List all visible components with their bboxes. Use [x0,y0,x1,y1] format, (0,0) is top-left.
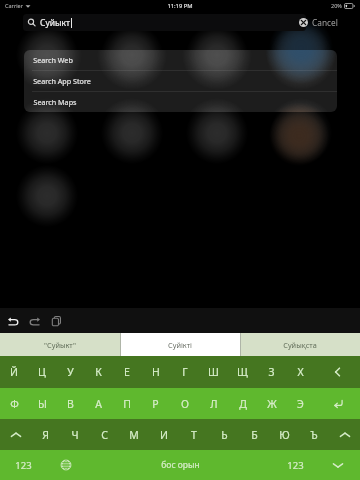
button[interactable]: Ю [269,419,299,450]
button[interactable]: Return [315,388,360,419]
button[interactable]: Search Web [24,50,337,70]
button[interactable]: Д [228,388,257,419]
staticText: Ч [71,428,79,442]
button[interactable]: У [56,356,84,388]
button[interactable]: Е [112,356,141,388]
staticText: Г [182,365,188,379]
button[interactable]: "Суйыкт" [0,333,120,356]
staticText: Search Maps [33,97,77,107]
staticText: 123 [15,459,32,472]
button[interactable]: Redo [28,314,41,327]
staticText: Search App Store [33,76,91,86]
staticText: 20% [331,2,342,9]
button[interactable]: Ф [0,388,28,419]
staticText: 123 [287,459,304,472]
staticText: Суйікті [168,340,192,350]
button[interactable]: Copy [50,314,63,327]
staticText: В [67,397,74,411]
staticText: Б [251,428,258,442]
staticText: Суйықста [283,340,317,350]
button[interactable]: Суйықста [240,333,360,356]
button[interactable]: Undo [6,314,19,327]
button[interactable]: Б [239,419,269,450]
button[interactable]: 123 [274,450,316,480]
button[interactable]: А [84,388,112,419]
staticText: Л [210,397,218,411]
staticText: П [123,397,131,411]
button[interactable]: Next keyboard [46,450,86,480]
staticText: Н [152,365,160,379]
button[interactable]: Hide keyboard [316,450,360,480]
staticText: З [268,365,275,379]
button[interactable]: В [56,388,84,419]
button[interactable]: Н [141,356,170,388]
staticText: Ы [38,397,47,411]
staticText: Ц [38,365,46,379]
staticText: Ъ [310,428,318,442]
staticText: Cancel [312,17,338,28]
button[interactable]: Суйыкт [23,14,306,31]
staticText: У [67,365,74,379]
staticText: Ф [10,397,19,411]
button[interactable]: Ь [209,419,239,450]
button[interactable]: Search Maps [24,91,337,112]
button[interactable]: Backspace [315,356,360,388]
staticText: Ж [267,397,277,411]
staticText: Суйыкт [40,17,70,29]
button[interactable]: Щ [228,356,257,388]
button[interactable]: Ч [60,419,89,450]
button[interactable]: Л [199,388,228,419]
button[interactable]: С [89,419,119,450]
staticText: Р [152,397,159,411]
staticText: А [95,397,102,411]
staticText: Ш [208,365,219,379]
button[interactable]: Clear text [299,18,308,27]
button[interactable]: Й [0,356,28,388]
staticText: М [129,428,139,442]
staticText: Ю [279,428,290,442]
staticText: Carrier [5,2,23,9]
button[interactable]: 123 [0,450,46,480]
button[interactable]: З [257,356,286,388]
button[interactable]: Э [286,388,315,419]
staticText: О [181,397,189,411]
button[interactable]: Т [179,419,209,450]
button[interactable]: Х [286,356,315,388]
button[interactable]: О [170,388,199,419]
staticText: С [101,428,108,442]
button[interactable]: П [112,388,141,419]
button[interactable]: Суйікті [120,333,240,356]
staticText: Й [10,365,18,379]
staticText: Т [191,428,197,442]
staticText: Ь [221,428,228,442]
button[interactable]: Я [31,419,60,450]
button[interactable]: Р [141,388,170,419]
button[interactable]: Ъ [299,419,329,450]
staticText: Д [239,397,247,411]
button[interactable]: Ш [199,356,228,388]
button[interactable]: Search App Store [24,70,337,91]
staticText: Я [42,428,49,442]
button[interactable]: Ж [257,388,286,419]
staticText: К [95,365,102,379]
button[interactable]: Ц [28,356,56,388]
button[interactable]: К [84,356,112,388]
button[interactable]: Shift [329,419,360,450]
staticText: 11:19 PM [167,2,193,10]
button[interactable]: М [119,419,149,450]
staticText: бос орын [161,459,200,471]
staticText: И [160,428,168,442]
button[interactable]: И [149,419,179,450]
staticText: Э [297,397,304,411]
button[interactable]: бос орын [86,450,274,480]
button[interactable]: Г [170,356,199,388]
staticText: Е [124,365,130,379]
button[interactable]: Shift [0,419,31,450]
button[interactable]: Cancel [312,14,338,31]
staticText: "Суйыкт" [44,340,76,350]
button[interactable]: Ы [28,388,56,419]
staticText: Search Web [33,55,73,65]
staticText: Х [297,365,304,379]
staticText: Щ [237,365,248,379]
